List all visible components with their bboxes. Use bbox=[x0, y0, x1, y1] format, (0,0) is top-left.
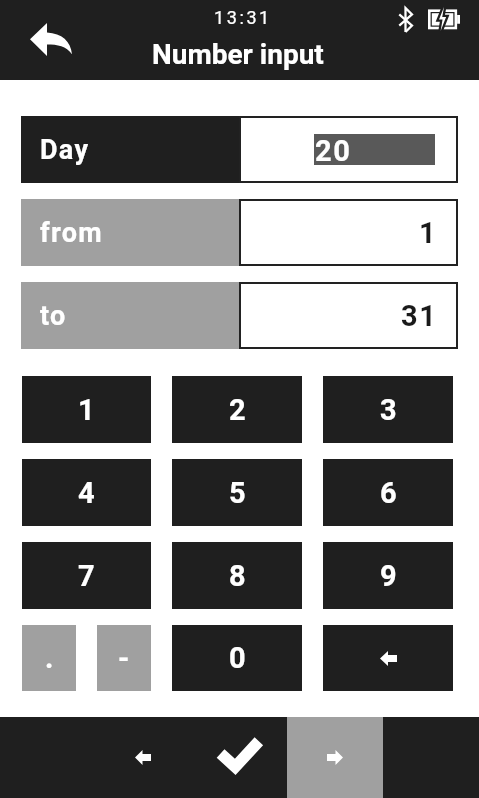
staticText: 13:31 bbox=[214, 7, 272, 28]
staticText: 5 bbox=[229, 476, 246, 510]
staticText: 1 bbox=[419, 216, 438, 250]
button[interactable]: 31 bbox=[239, 282, 458, 349]
button[interactable]: 8 bbox=[172, 542, 302, 609]
button[interactable]: 5 bbox=[172, 459, 302, 526]
staticText: 8 bbox=[229, 559, 246, 593]
button[interactable]: 20 bbox=[239, 116, 458, 183]
staticText: Number input bbox=[152, 38, 324, 71]
staticText: . bbox=[45, 641, 54, 675]
staticText: 20 bbox=[315, 134, 352, 165]
button[interactable]: 3 bbox=[323, 376, 453, 443]
staticText: to bbox=[40, 300, 67, 332]
button[interactable]: Previous bbox=[95, 717, 191, 798]
staticText: from bbox=[40, 217, 103, 249]
staticText: 2 bbox=[229, 393, 246, 427]
button[interactable]: . bbox=[22, 625, 76, 691]
staticText: 31 bbox=[401, 299, 438, 333]
button[interactable]: 4 bbox=[22, 459, 151, 526]
staticText: 1 bbox=[78, 393, 95, 427]
button[interactable]: 9 bbox=[323, 542, 453, 609]
button[interactable]: 1 bbox=[22, 376, 151, 443]
button[interactable]: Day bbox=[21, 116, 239, 183]
staticText: 0 bbox=[229, 641, 246, 675]
button[interactable]: Back bbox=[18, 11, 74, 67]
button[interactable]: 2 bbox=[172, 376, 302, 443]
staticText: 7 bbox=[78, 559, 95, 593]
button[interactable]: from bbox=[21, 199, 239, 266]
button[interactable]: Backspace bbox=[323, 625, 453, 691]
button[interactable]: 7 bbox=[22, 542, 151, 609]
button[interactable]: Next bbox=[287, 717, 383, 798]
button[interactable]: Confirm bbox=[191, 717, 287, 798]
button[interactable]: - bbox=[97, 625, 151, 691]
staticText: 3 bbox=[380, 393, 397, 427]
staticText: 9 bbox=[380, 559, 397, 593]
staticText: - bbox=[118, 641, 130, 675]
staticText: Day bbox=[40, 134, 90, 166]
button[interactable]: 1 bbox=[239, 199, 458, 266]
button[interactable]: to bbox=[21, 282, 239, 349]
button[interactable]: 6 bbox=[323, 459, 453, 526]
button[interactable]: 0 bbox=[172, 625, 302, 691]
staticText: 4 bbox=[78, 476, 95, 510]
staticText: 6 bbox=[380, 476, 397, 510]
